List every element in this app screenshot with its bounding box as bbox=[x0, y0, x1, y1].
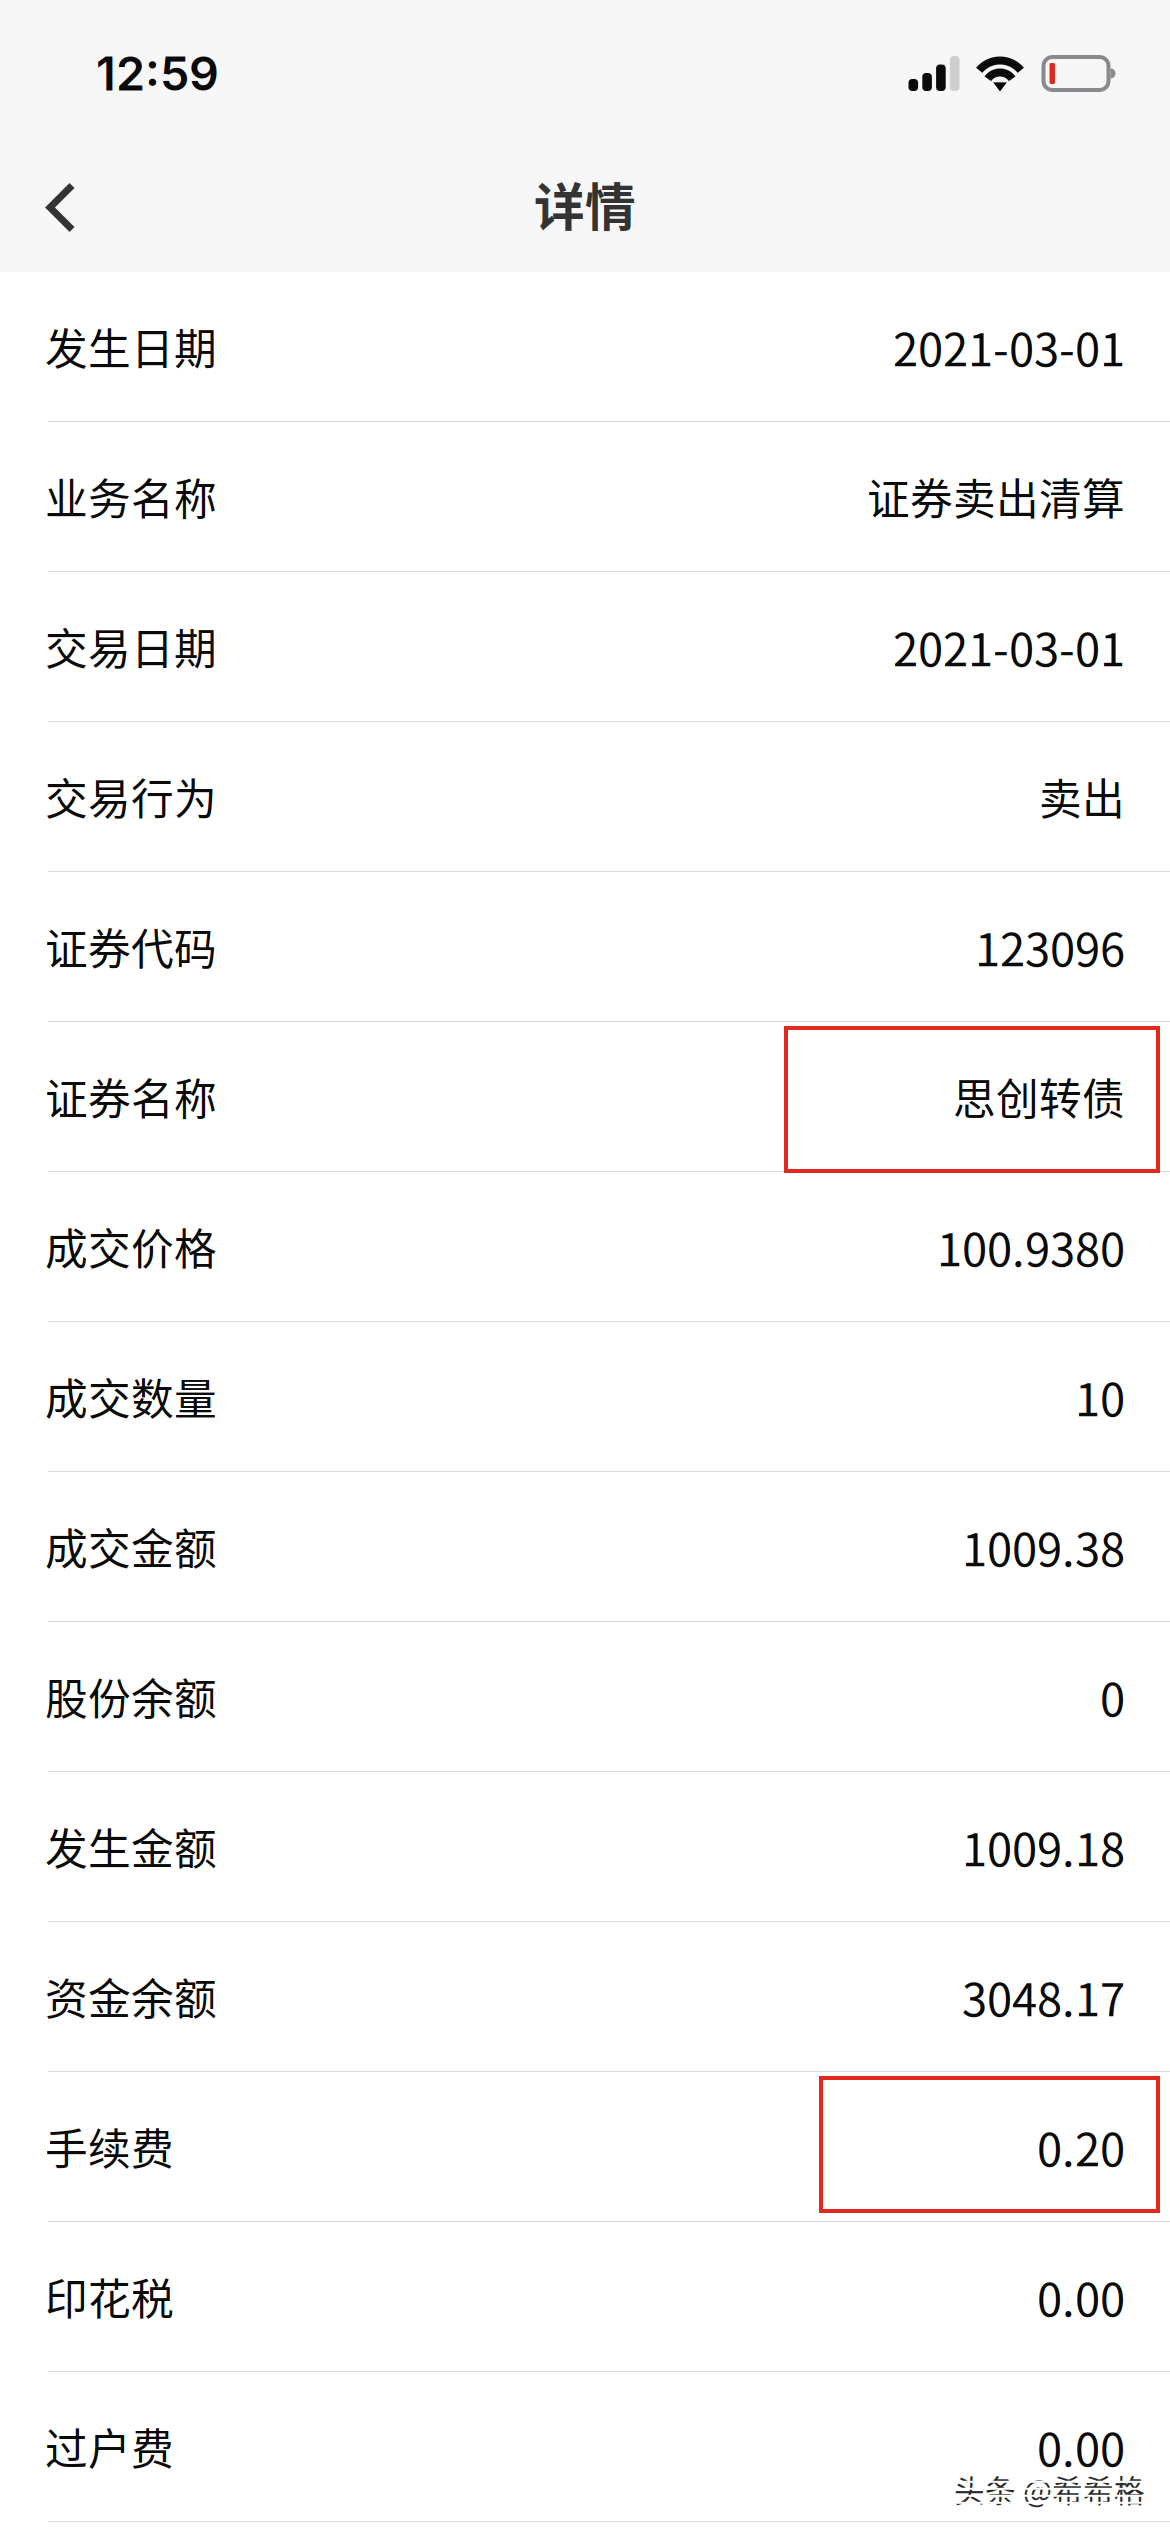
staticText: 10 bbox=[1075, 1364, 1125, 1429]
staticText: 股份余额 bbox=[45, 1666, 217, 1727]
staticText: 123096 bbox=[975, 914, 1125, 979]
staticText: 资金余额 bbox=[45, 1966, 217, 2027]
staticText: 0 bbox=[1100, 1664, 1125, 1729]
staticText: 过户费 bbox=[45, 2416, 174, 2477]
staticText: 业务名称 bbox=[45, 466, 217, 527]
staticText: 证券代码 bbox=[45, 916, 217, 977]
button[interactable]: Back bbox=[0, 136, 116, 268]
staticText: 0.20 bbox=[1037, 2114, 1125, 2179]
staticText: 交易日期 bbox=[45, 616, 217, 677]
staticText: 2021-03-01 bbox=[893, 614, 1125, 679]
staticText: 2021-03-01 bbox=[893, 314, 1125, 379]
staticText: 思创转债 bbox=[953, 1066, 1125, 1127]
staticText: 头条 @希希格 bbox=[954, 2467, 1145, 2511]
staticText: 12:59 bbox=[96, 45, 219, 102]
staticText: 0.00 bbox=[1037, 2414, 1125, 2479]
staticText: 详情 bbox=[534, 167, 636, 241]
staticText: 成交金额 bbox=[45, 1516, 217, 1577]
staticText: 证券卖出清算 bbox=[867, 466, 1125, 527]
staticText: 卖出 bbox=[1039, 766, 1125, 827]
staticText: 1009.38 bbox=[962, 1514, 1125, 1579]
staticText: 成交价格 bbox=[45, 1216, 217, 1277]
staticText: 印花税 bbox=[45, 2266, 174, 2327]
staticText: 手续费 bbox=[45, 2116, 174, 2177]
staticText: 成交数量 bbox=[45, 1366, 217, 1427]
staticText: 发生金额 bbox=[45, 1816, 217, 1877]
staticText: 证券名称 bbox=[45, 1066, 217, 1127]
staticText: 交易行为 bbox=[45, 766, 217, 827]
staticText: 0.00 bbox=[1037, 2264, 1125, 2329]
staticText: 3048.17 bbox=[962, 1964, 1125, 2029]
staticText: 100.9380 bbox=[937, 1214, 1125, 1279]
staticText: 发生日期 bbox=[45, 316, 217, 377]
staticText: 1009.18 bbox=[962, 1814, 1125, 1879]
